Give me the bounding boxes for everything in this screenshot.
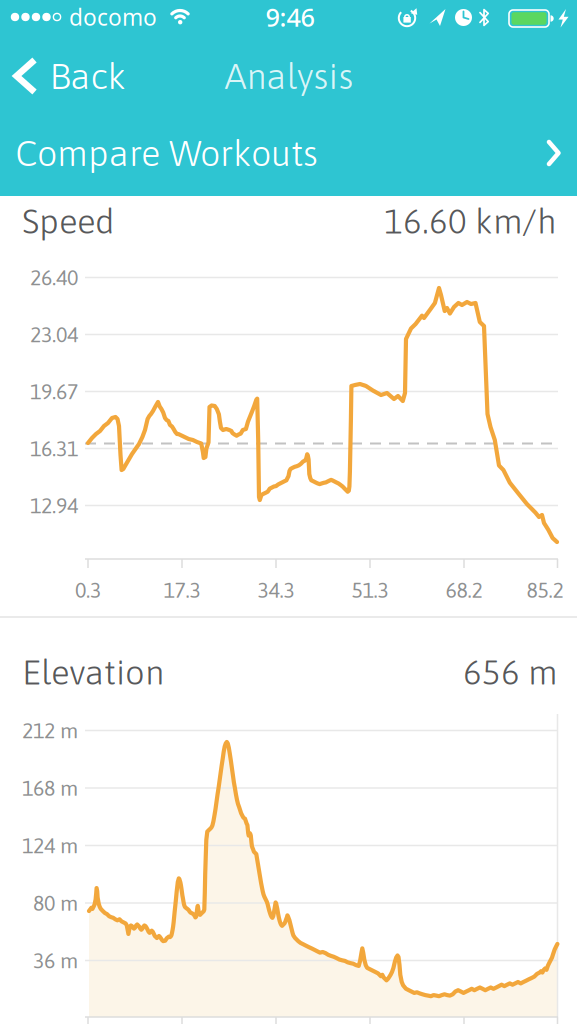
staticText: 17.3 [163,578,200,602]
staticText: Speed [22,201,115,241]
staticText: 85.2 [526,578,563,602]
staticText: 168 m [22,776,78,800]
staticText: 656 m [463,652,557,692]
staticText: 124 m [22,833,78,858]
staticText: 23.04 [30,322,78,347]
staticText: 9:46 [265,0,314,34]
staticText: 0.3 [75,578,101,602]
staticText: Back [49,55,126,97]
staticText: 16.60 km/h [384,201,557,241]
staticText: 26.40 [30,265,78,290]
button[interactable]: Back [13,48,138,104]
staticText: 34.3 [257,578,294,602]
staticText: 51.3 [351,578,388,602]
staticText: 212 m [22,718,78,743]
staticText: Analysis [224,55,353,97]
staticText: 68.2 [445,578,482,602]
staticText: docomo [69,2,157,32]
button[interactable]: Compare Workouts [0,113,577,193]
staticText: 80 m [33,891,78,915]
staticText: 19.67 [30,379,78,404]
staticText: 36 m [33,948,78,973]
staticText: 16.31 [30,436,78,461]
staticText: Compare Workouts [15,132,318,174]
staticText: 12.94 [30,493,78,518]
staticText: Elevation [22,652,164,692]
